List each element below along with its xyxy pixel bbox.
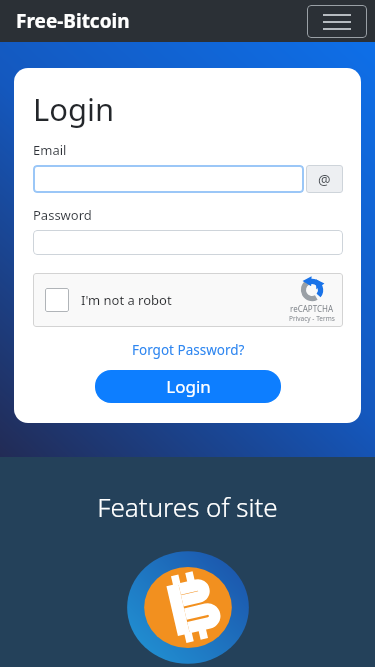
button[interactable]	[33, 165, 304, 193]
button[interactable]: Email domain	[306, 165, 343, 193]
staticText: Features of site	[97, 489, 278, 524]
staticText: Login	[33, 88, 115, 130]
button[interactable]: I'm not a robot	[33, 273, 343, 327]
staticText: reCAPTCHA	[290, 303, 334, 314]
staticText: I'm not a robot	[81, 291, 172, 309]
staticText: Login	[166, 375, 211, 398]
staticText: Privacy - Terms	[289, 314, 335, 323]
staticText: Forgot Password?	[132, 341, 245, 359]
staticText: Email	[33, 141, 67, 159]
staticText: Password	[33, 206, 92, 224]
staticText: @	[318, 170, 331, 189]
button[interactable]: Open menu	[307, 5, 367, 38]
button[interactable]	[33, 230, 343, 255]
staticText: Free-Bitcoin	[16, 8, 130, 34]
button[interactable]: Login	[95, 370, 281, 403]
button[interactable]: Forgot Password?	[128, 340, 249, 360]
